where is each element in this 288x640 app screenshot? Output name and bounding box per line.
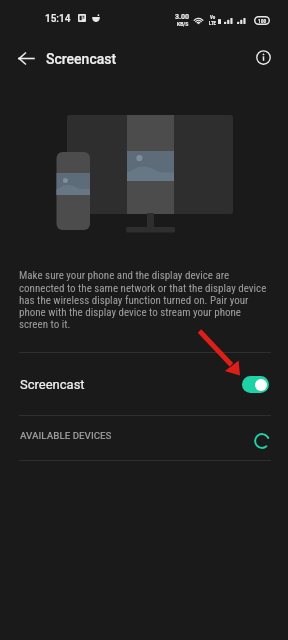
staticText: 100 <box>258 18 267 24</box>
button[interactable]: Back <box>12 44 40 72</box>
staticText: KB/S <box>177 21 189 27</box>
staticText: AVAILABLE DEVICES <box>20 430 112 441</box>
button[interactable]: Screencast <box>0 353 288 415</box>
staticText: Screencast <box>20 377 85 392</box>
staticText: Screencast <box>46 51 117 67</box>
staticText: Vo <box>210 14 216 20</box>
button[interactable]: Info <box>250 44 276 70</box>
staticText: Make sure your phone and the display dev… <box>19 269 269 330</box>
staticText: 3.00 <box>175 13 190 21</box>
staticText: LTE <box>209 20 217 26</box>
staticText: 15:14 <box>45 13 71 25</box>
